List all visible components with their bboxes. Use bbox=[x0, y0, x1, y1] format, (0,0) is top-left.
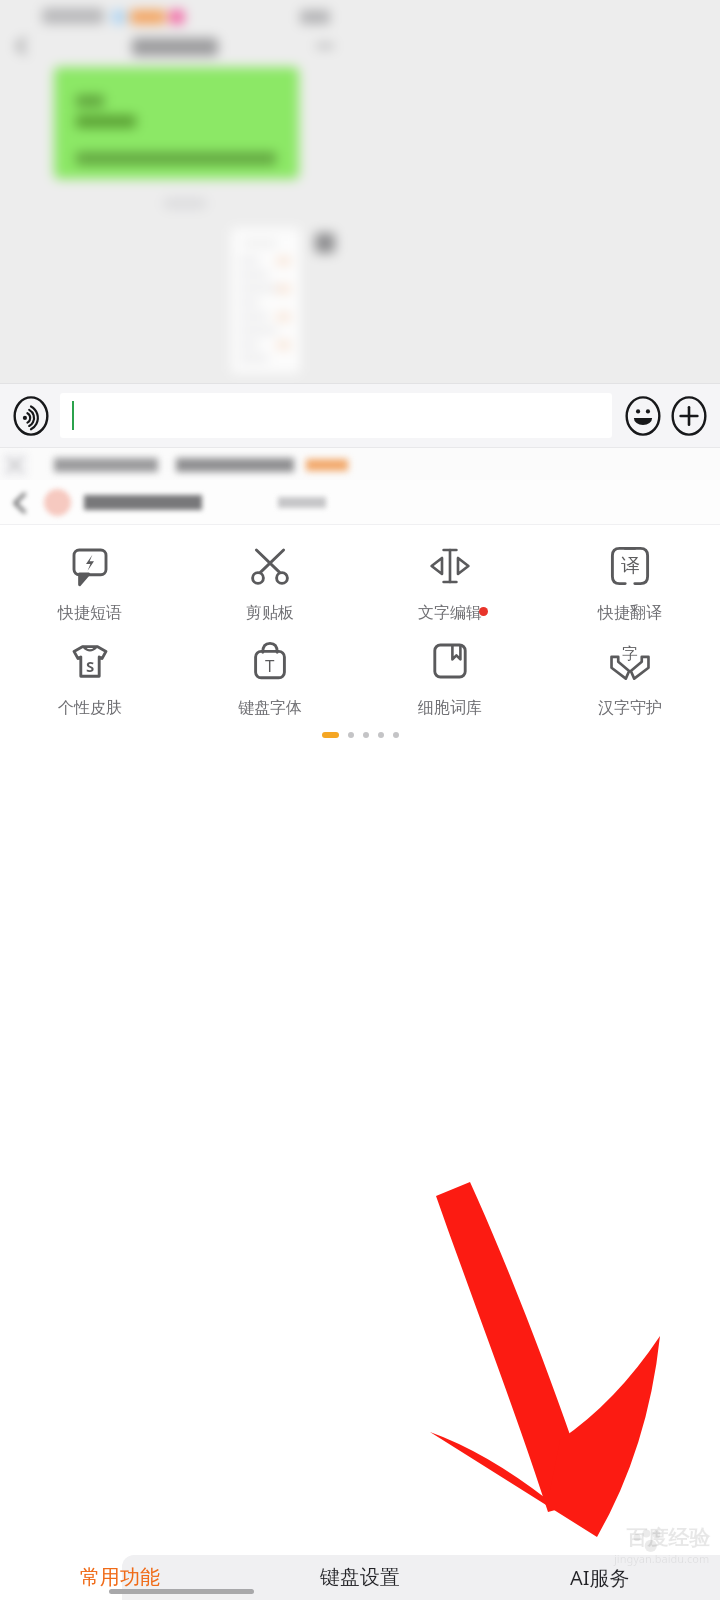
staticText: 字 bbox=[622, 644, 638, 664]
button[interactable]: S bbox=[0, 638, 180, 718]
button[interactable]: 键盘设置 bbox=[240, 1555, 480, 1600]
button[interactable]: 文字编辑 bbox=[360, 543, 540, 623]
button[interactable]: 剪贴板 bbox=[180, 543, 360, 623]
button[interactable]: Emoji bbox=[624, 397, 662, 435]
staticText: 个性皮肤 bbox=[58, 698, 122, 718]
button[interactable]: More bbox=[670, 397, 708, 435]
staticText: S bbox=[86, 656, 95, 676]
staticText: 文字编辑 bbox=[418, 603, 482, 623]
staticText: 常用功能 bbox=[80, 1565, 160, 1590]
button[interactable]: 细胞词库 bbox=[360, 638, 540, 718]
staticText: 细胞词库 bbox=[418, 698, 482, 718]
staticText: T bbox=[265, 654, 275, 677]
staticText: 键盘字体 bbox=[238, 698, 302, 718]
staticText: AI服务 bbox=[570, 1564, 630, 1591]
button[interactable]: 字 bbox=[540, 638, 720, 718]
staticText: 快捷翻译 bbox=[598, 603, 662, 623]
button[interactable]: 译 bbox=[540, 543, 720, 623]
button[interactable]: T bbox=[180, 638, 360, 718]
button[interactable] bbox=[60, 393, 612, 438]
staticText: 汉字守护 bbox=[598, 698, 662, 718]
staticText: 键盘设置 bbox=[320, 1565, 400, 1590]
staticText: 百度经验 bbox=[626, 1525, 710, 1551]
button[interactable]: 快捷短语 bbox=[0, 543, 180, 623]
staticText: jingyan.baidu.com bbox=[614, 1551, 710, 1566]
button[interactable]: Voice input bbox=[12, 397, 50, 435]
staticText: 剪贴板 bbox=[246, 603, 294, 623]
button[interactable]: AI服务 bbox=[480, 1555, 720, 1600]
staticText: 译 bbox=[621, 554, 640, 578]
button[interactable]: 常用功能 bbox=[0, 1555, 240, 1600]
staticText: 快捷短语 bbox=[58, 603, 122, 623]
